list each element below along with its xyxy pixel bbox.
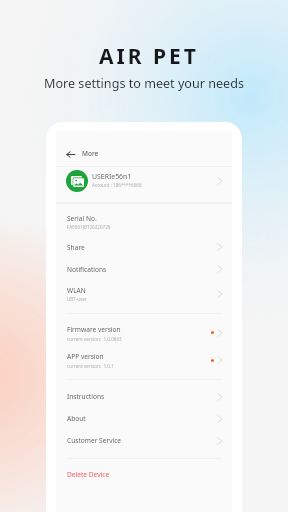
staticText: current version: 1.0.1 <box>67 363 114 369</box>
staticText: Delete Device <box>67 470 110 479</box>
button[interactable] <box>56 408 232 430</box>
button[interactable] <box>56 380 232 408</box>
staticText: More <box>82 149 99 158</box>
button[interactable] <box>56 346 232 379</box>
button[interactable] <box>56 458 232 492</box>
staticText: UBT-user <box>67 296 87 302</box>
staticText: FAE001JBT20220729 <box>67 224 111 230</box>
button[interactable] <box>56 314 232 346</box>
button[interactable] <box>56 280 232 313</box>
staticText: Instructions <box>67 392 105 401</box>
staticText: WLAN <box>67 286 86 295</box>
button[interactable]: Back <box>61 145 79 163</box>
staticText: About <box>67 414 86 423</box>
staticText: current version: 1.0.0863 <box>67 336 122 342</box>
staticText: Share <box>67 243 85 252</box>
staticText: Firmware version <box>67 325 121 334</box>
staticText: Notifications <box>67 265 107 274</box>
staticText: USERIe56n1 <box>92 172 132 181</box>
staticText: Customer Service <box>67 436 122 445</box>
button[interactable] <box>56 258 232 280</box>
button[interactable] <box>56 430 232 457</box>
button[interactable] <box>56 167 232 202</box>
staticText: APP version <box>67 352 104 361</box>
button[interactable] <box>56 236 232 258</box>
staticText: AIR PET <box>99 42 199 71</box>
staticText: More settings to meet your needs <box>44 75 244 92</box>
staticText: Account : 186****6666 <box>92 182 142 188</box>
staticText: Serial No. <box>67 214 97 223</box>
button[interactable] <box>56 205 232 232</box>
